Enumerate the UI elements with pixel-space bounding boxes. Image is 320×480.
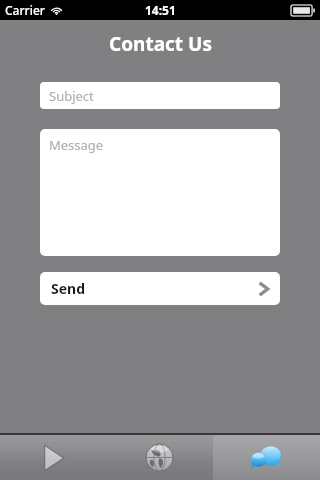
staticText: Message: [49, 136, 104, 154]
staticText: Carrier: [5, 2, 45, 18]
staticText: Contact Us: [109, 31, 212, 57]
staticText: Subject: [49, 87, 94, 105]
button[interactable]: Play: [0, 435, 106, 480]
button[interactable]: Send: [40, 272, 280, 305]
staticText: 14:51: [145, 2, 176, 18]
button[interactable]: Browse: [106, 435, 213, 480]
staticText: Send: [51, 279, 86, 298]
button[interactable]: Contact Us: [213, 435, 320, 480]
button[interactable]: Message: [40, 129, 280, 256]
button[interactable]: Subject: [40, 82, 280, 109]
